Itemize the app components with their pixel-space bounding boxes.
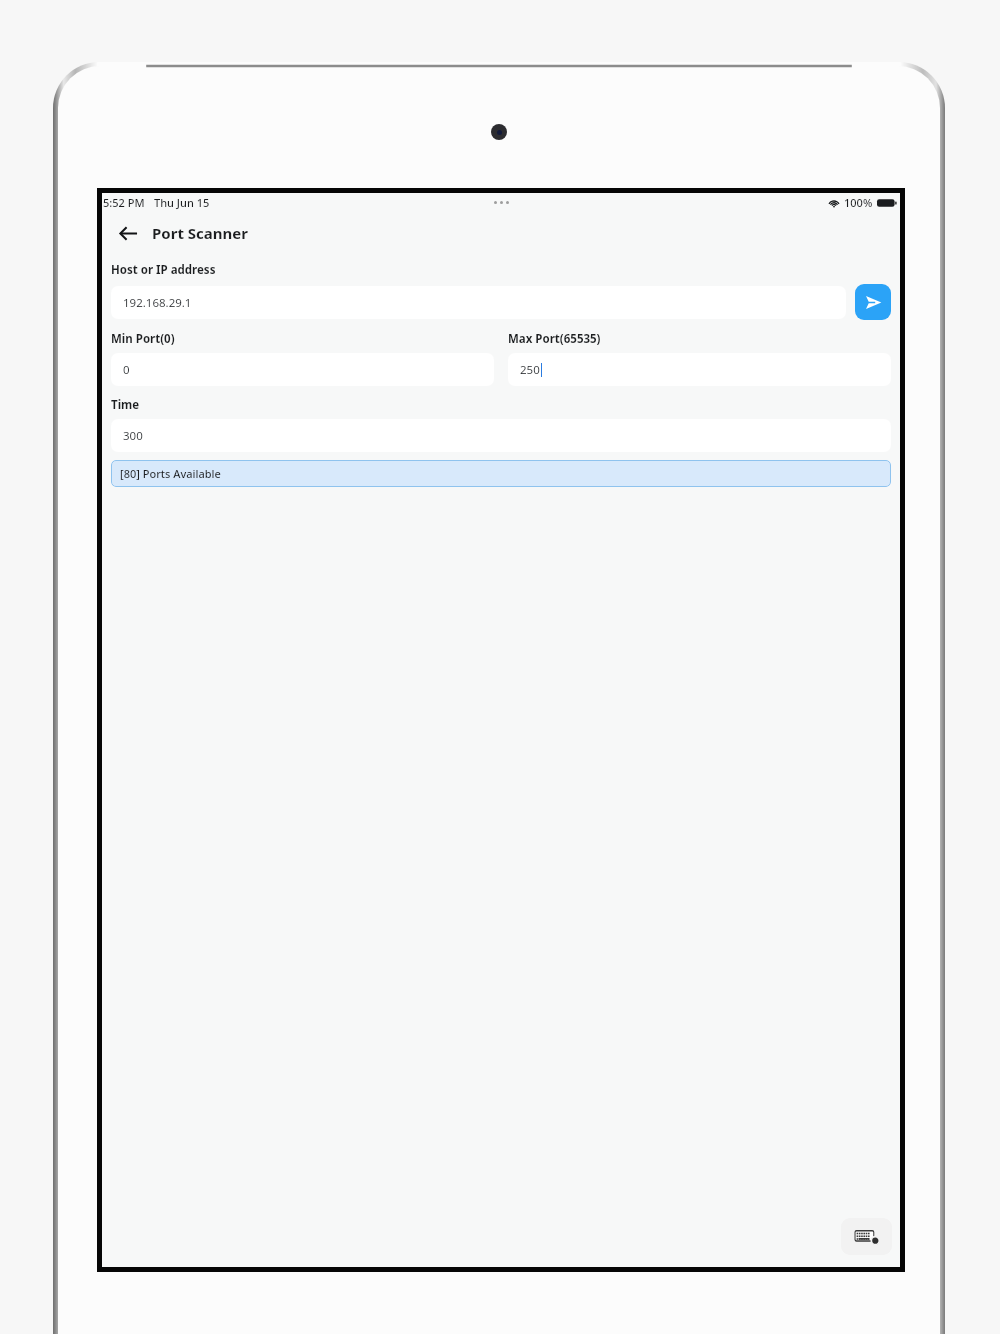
staticText: Port Scanner (152, 223, 248, 243)
button[interactable]: [80] Ports Available (111, 460, 891, 487)
staticText: 250 (520, 362, 540, 378)
staticText: Max Port(65535) (508, 331, 601, 347)
staticText: Time (111, 397, 140, 413)
button[interactable]: 192.168.29.1 (111, 286, 846, 319)
staticText: 0 (123, 362, 130, 378)
staticText: 300 (123, 428, 143, 444)
staticText: Host or IP address (111, 262, 216, 278)
button[interactable]: Back (112, 217, 144, 249)
button[interactable]: Send (855, 284, 891, 320)
button[interactable]: 250 (508, 353, 891, 386)
staticText: 5:52 PM (103, 195, 145, 210)
staticText: 100% (844, 195, 873, 210)
button[interactable]: Hide keyboard (841, 1218, 892, 1255)
staticText: [80] Ports Available (120, 466, 221, 481)
staticText: Thu Jun 15 (154, 195, 210, 210)
button[interactable]: 300 (111, 419, 891, 452)
button[interactable]: 0 (111, 353, 494, 386)
staticText: 192.168.29.1 (123, 295, 192, 311)
staticText: Min Port(0) (111, 331, 175, 347)
